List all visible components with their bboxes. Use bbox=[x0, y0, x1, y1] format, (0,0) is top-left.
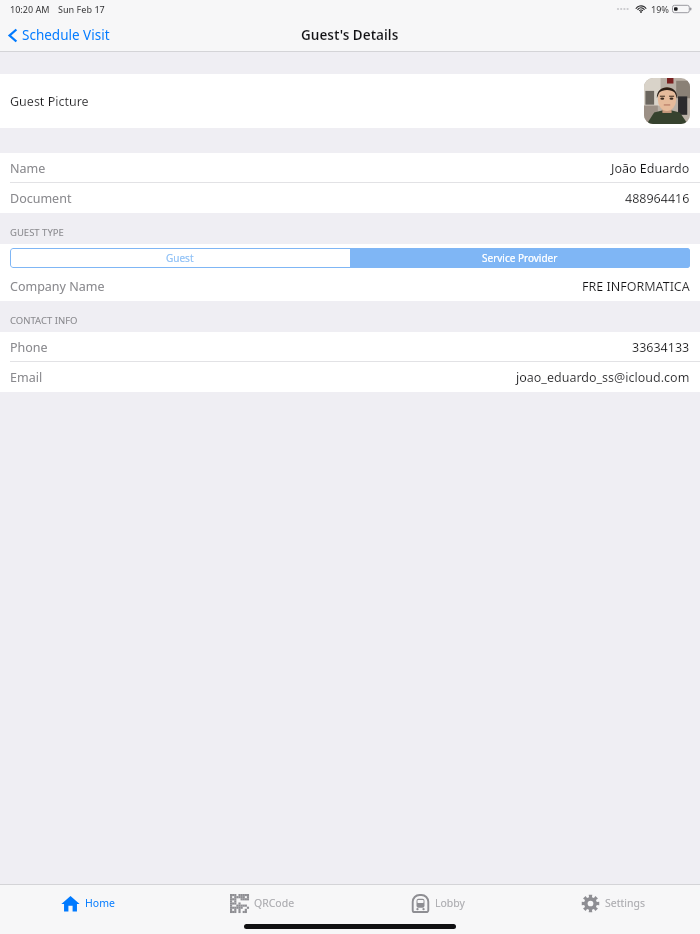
staticText: joao_eduardo_ss@icloud.com bbox=[516, 369, 690, 386]
staticText: Lobby bbox=[435, 896, 465, 910]
button[interactable]: Document bbox=[0, 183, 700, 213]
staticText: Email bbox=[10, 369, 43, 386]
staticText: GUEST TYPE bbox=[10, 226, 64, 239]
button[interactable]: Name bbox=[0, 153, 700, 183]
staticText: Company Name bbox=[10, 278, 105, 295]
button[interactable]: Phone bbox=[0, 332, 700, 362]
staticText: Document bbox=[10, 190, 72, 207]
button[interactable]: Guest bbox=[10, 248, 350, 268]
staticText: FRE INFORMATICA bbox=[582, 278, 690, 295]
staticText: João Eduardo bbox=[611, 160, 690, 177]
staticText: Service Provider bbox=[482, 251, 558, 265]
staticText: Phone bbox=[10, 339, 48, 356]
button[interactable]: QRCode bbox=[175, 885, 350, 921]
button[interactable]: Home bbox=[0, 885, 175, 921]
staticText: Schedule Visit bbox=[22, 26, 110, 44]
staticText: Name bbox=[10, 160, 46, 177]
staticText: 10:20 AM bbox=[10, 3, 50, 15]
button[interactable]: Guest Picture bbox=[0, 74, 700, 128]
staticText: 33634133 bbox=[632, 339, 690, 356]
staticText: Guest bbox=[166, 251, 194, 265]
staticText: QRCode bbox=[254, 896, 295, 910]
button[interactable]: Service Provider bbox=[350, 248, 690, 268]
staticText: Settings bbox=[605, 896, 645, 910]
staticText: CONTACT INFO bbox=[10, 314, 78, 327]
staticText: Guest's Details bbox=[301, 26, 399, 44]
button[interactable]: Company Name bbox=[0, 271, 700, 301]
staticText: 19% bbox=[651, 3, 669, 15]
button[interactable]: Email bbox=[0, 362, 700, 392]
staticText: 488964416 bbox=[625, 190, 690, 207]
staticText: Guest Picture bbox=[10, 93, 89, 110]
button[interactable]: Lobby bbox=[350, 885, 525, 921]
other: Guest photo bbox=[644, 78, 690, 124]
staticText: Home bbox=[85, 896, 115, 910]
button[interactable]: Settings bbox=[525, 885, 700, 921]
staticText: Sun Feb 17 bbox=[58, 3, 105, 15]
button[interactable]: Schedule Visit bbox=[0, 21, 120, 49]
